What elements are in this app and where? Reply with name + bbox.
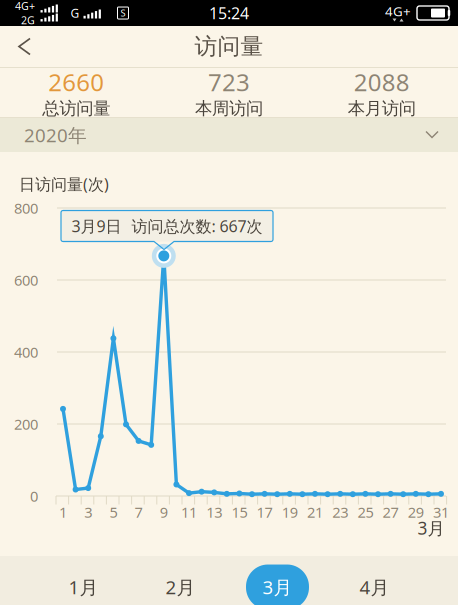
staticText: 25	[357, 502, 373, 522]
staticText: 29	[408, 502, 424, 522]
staticText: 3	[84, 502, 92, 522]
staticText: 15:24	[209, 2, 249, 24]
staticText: 23	[332, 502, 348, 522]
staticText: 2G	[21, 13, 35, 27]
staticText: 日访问量(次)	[19, 173, 109, 195]
staticText: 15	[231, 502, 247, 522]
staticText: 2月	[165, 575, 195, 599]
staticText: 1	[59, 502, 67, 522]
staticText: 11	[181, 502, 197, 522]
staticText: 9	[160, 502, 168, 522]
button[interactable]: 2月	[149, 564, 212, 605]
staticText: 4月	[359, 575, 389, 599]
staticText: 2088	[354, 66, 410, 98]
staticText: 31	[433, 502, 449, 522]
staticText: 本周访问	[195, 98, 263, 119]
staticText: 3月9日 访问总次数: 667次	[71, 215, 262, 237]
staticText: 17	[257, 502, 273, 522]
staticText: 723	[208, 66, 250, 98]
staticText: S	[120, 7, 125, 19]
staticText: 19	[282, 502, 298, 522]
staticText: 7	[135, 502, 143, 522]
staticText: 13	[206, 502, 222, 522]
staticText: 0	[30, 486, 38, 506]
button[interactable]: 1月	[52, 564, 115, 605]
staticText: 2660	[48, 66, 104, 98]
staticText: 总访问量	[42, 98, 110, 119]
staticText: 200	[14, 414, 38, 434]
staticText: 访问量	[194, 33, 263, 60]
staticText: 800	[14, 198, 38, 218]
button[interactable]: 3月	[246, 564, 309, 605]
staticText: 600	[14, 270, 38, 290]
staticText: 2020年	[24, 123, 87, 147]
staticText: 4G+	[15, 0, 35, 13]
staticText: 本月访问	[348, 98, 416, 119]
staticText: 3月	[417, 516, 444, 539]
button[interactable]: Back	[0, 26, 50, 66]
staticText: 27	[383, 502, 399, 522]
staticText: 4G+	[385, 2, 411, 20]
button[interactable]: 4月	[343, 564, 406, 605]
staticText: 3月	[262, 575, 292, 599]
staticText: 1月	[68, 575, 98, 599]
button[interactable]: 2020年	[0, 118, 458, 152]
staticText: 21	[307, 502, 323, 522]
staticText: 400	[14, 342, 38, 362]
staticText: G	[70, 5, 79, 21]
staticText: 5	[109, 502, 117, 522]
